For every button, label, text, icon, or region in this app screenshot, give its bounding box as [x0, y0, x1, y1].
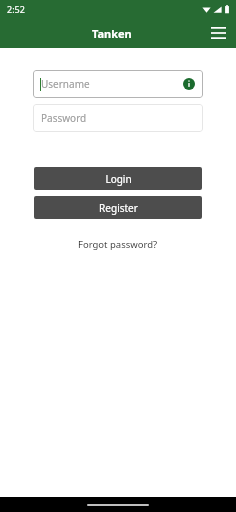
button[interactable]: Forgot password?: [70, 235, 166, 254]
button[interactable]: Username: [33, 70, 203, 98]
button[interactable]: Open navigation menu: [205, 20, 231, 46]
button[interactable]: Login: [34, 167, 202, 190]
staticText: 2:52: [7, 3, 25, 15]
button[interactable]: Register: [34, 196, 202, 219]
staticText: Tanken: [92, 26, 132, 41]
staticText: Username: [41, 77, 90, 91]
button[interactable]: Password: [33, 104, 203, 132]
staticText: Register: [99, 201, 138, 215]
other: Username info: [183, 78, 195, 90]
staticText: Forgot password?: [78, 238, 158, 251]
staticText: Password: [41, 111, 87, 125]
staticText: Login: [105, 172, 132, 186]
